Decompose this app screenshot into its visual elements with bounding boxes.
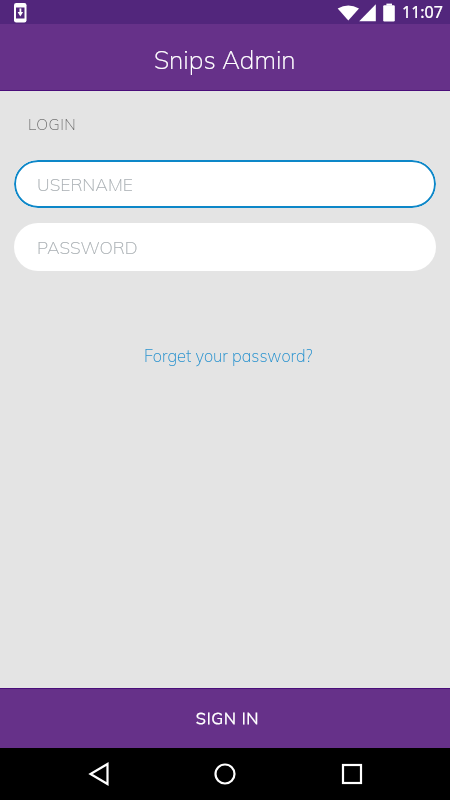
staticText: USERNAME [37,173,133,195]
button[interactable]: Back [79,750,127,798]
button[interactable]: Home [201,750,249,798]
button[interactable]: PASSWORD [14,223,436,271]
staticText: SIGN IN [196,708,260,728]
staticText: 11:07 [402,1,443,23]
staticText: PASSWORD [37,236,138,258]
button[interactable]: USERNAME [14,160,436,208]
button[interactable]: SIGN IN [0,688,450,748]
staticText: LOGIN [28,114,77,133]
button[interactable]: Recent apps [328,750,376,798]
button[interactable]: Forget your password? [132,343,319,368]
staticText: Snips Admin [154,44,296,75]
